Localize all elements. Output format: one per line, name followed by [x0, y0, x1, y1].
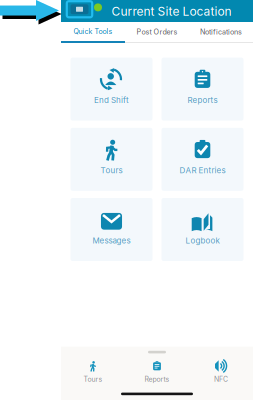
staticText: Current Site Location [111, 4, 231, 18]
button[interactable]: Reports [161, 58, 243, 121]
staticText: Reports [187, 95, 217, 105]
button[interactable]: DAR Entries [161, 128, 243, 191]
staticText: Quick Tools [73, 27, 112, 36]
staticText: Reports [144, 375, 169, 383]
button[interactable]: End Shift [70, 58, 152, 121]
button[interactable]: Post Orders [125, 22, 189, 43]
staticText: Logbook [185, 236, 219, 245]
button[interactable]: Tours [70, 128, 152, 191]
button[interactable]: NFC [189, 358, 253, 384]
button[interactable]: Tours [61, 358, 125, 384]
staticText: End Shift [94, 95, 129, 105]
button[interactable]: Quick Tools [61, 22, 125, 43]
staticText: Notifications [200, 28, 242, 36]
button[interactable]: Logbook [161, 198, 243, 261]
button[interactable]: Messages [70, 198, 152, 261]
staticText: DAR Entries [179, 165, 225, 175]
staticText: NFC [214, 375, 228, 383]
staticText: Post Orders [136, 28, 177, 36]
button[interactable]: Menu [67, 1, 92, 17]
staticText: Tours [83, 375, 102, 383]
staticText: Tours [100, 165, 122, 175]
button[interactable]: Notifications [189, 22, 253, 43]
button[interactable]: Reports [125, 358, 189, 384]
staticText: Messages [92, 236, 130, 245]
